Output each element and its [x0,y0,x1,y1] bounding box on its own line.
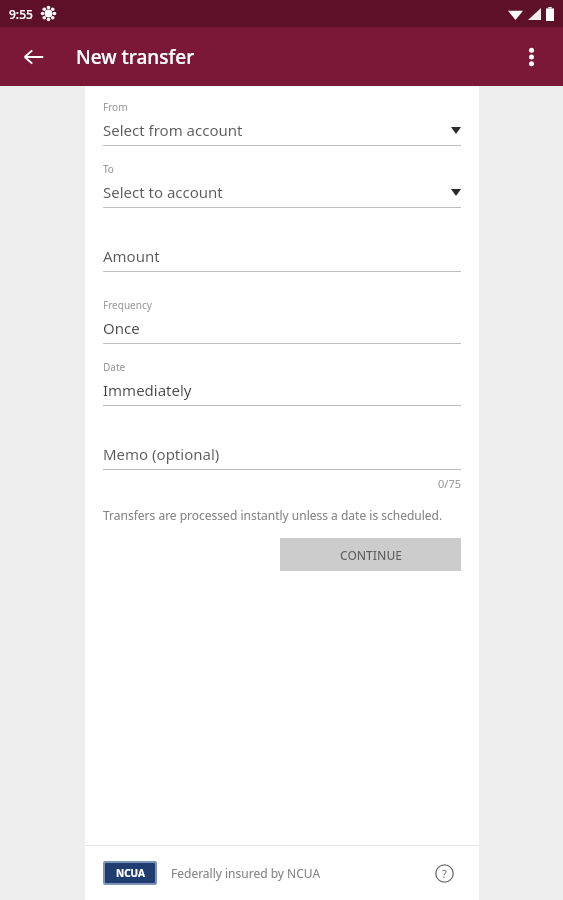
staticText: Immediately [103,380,192,400]
staticText: Date [103,360,126,374]
button[interactable]: More options [507,33,555,81]
button[interactable]: Back [10,33,58,81]
staticText: Transfers are processed instantly unless… [103,507,443,523]
button[interactable]: Date [103,360,461,406]
staticText: New transfer [76,44,195,70]
staticText: Select to account [103,182,223,202]
button[interactable]: Memo (optional) [103,442,461,470]
staticText: Memo (optional) [103,444,220,464]
staticText: Select from account [103,120,243,140]
staticText: CONTINUE [340,547,402,563]
staticText: 0/75 [438,476,461,491]
staticText: To [103,162,114,176]
button[interactable]: To [103,162,461,208]
staticText: NCUA [116,866,145,880]
button[interactable]: CONTINUE [280,538,461,571]
staticText: Once [103,318,140,338]
button[interactable]: Frequency [103,298,461,344]
button[interactable]: From [103,100,461,146]
staticText: Amount [103,246,160,266]
staticText: Frequency [103,298,152,312]
staticText: ? [442,866,447,881]
staticText: From [103,100,128,114]
button[interactable]: Amount [103,244,461,272]
staticText: Federally insured by NCUA [171,865,321,881]
staticText: 9:55 [9,6,33,22]
button[interactable]: Help [427,856,461,890]
